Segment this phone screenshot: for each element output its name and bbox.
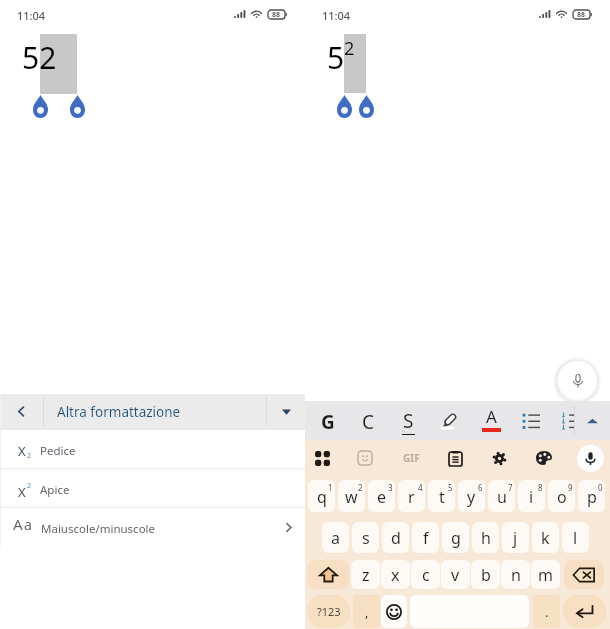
staticText: l: [573, 527, 578, 549]
button[interactable]: Back: [0, 394, 43, 429]
staticText: S: [403, 408, 414, 434]
button[interactable]: Stickers: [346, 440, 384, 476]
button[interactable]: Open submenu: [271, 508, 305, 546]
staticText: 11:04: [17, 8, 46, 23]
staticText: X: [18, 442, 26, 460]
button[interactable]: Themes: [525, 440, 563, 476]
button[interactable]: h: [472, 522, 499, 553]
staticText: 52: [22, 37, 57, 78]
staticText: k: [541, 527, 550, 549]
staticText: q: [317, 486, 327, 508]
button[interactable]: f: [412, 522, 439, 553]
staticText: ?123: [317, 604, 341, 619]
staticText: 0: [598, 482, 603, 493]
button[interactable]: 0: [578, 480, 605, 512]
staticText: 88: [577, 10, 586, 20]
button[interactable]: n: [501, 560, 530, 589]
staticText: 4: [418, 482, 423, 493]
staticText: m: [538, 564, 553, 586]
staticText: G: [321, 409, 335, 435]
button[interactable]: X: [0, 469, 305, 507]
staticText: ,: [365, 603, 369, 621]
staticText: A: [13, 514, 23, 534]
staticText: 5: [327, 37, 345, 78]
staticText: b: [481, 564, 491, 586]
button[interactable]: Back: [0, 394, 305, 429]
button[interactable]: 7: [488, 480, 515, 512]
staticText: 11:04: [322, 8, 351, 23]
button[interactable]: 3: [368, 480, 395, 512]
button[interactable]: Shift: [307, 560, 349, 589]
button[interactable]: k: [532, 522, 559, 553]
staticText: o: [557, 486, 567, 508]
button[interactable]: Backspace: [564, 560, 604, 589]
button[interactable]: Voice input: [558, 361, 597, 400]
button[interactable]: g: [442, 522, 469, 553]
button[interactable]: G: [308, 401, 348, 440]
staticText: a: [24, 515, 32, 534]
staticText: 2: [344, 36, 355, 61]
button[interactable]: l: [562, 522, 589, 553]
button[interactable]: Highlighter: [429, 401, 469, 440]
button[interactable]: Bulleted list: [512, 401, 550, 440]
button[interactable]: Numbered list: [551, 401, 585, 440]
staticText: d: [391, 527, 401, 549]
button[interactable]: 4: [398, 480, 425, 512]
button[interactable]: s: [352, 522, 379, 553]
staticText: X: [18, 483, 26, 501]
button[interactable]: C: [348, 401, 388, 440]
button[interactable]: Collapse toolbar: [575, 401, 609, 440]
staticText: Apice: [40, 482, 70, 498]
button[interactable]: Symbols: [307, 595, 350, 628]
staticText: p: [587, 486, 597, 508]
button[interactable]: d: [382, 522, 409, 553]
staticText: s: [362, 527, 370, 549]
button[interactable]: Apps: [303, 440, 341, 476]
button[interactable]: 5: [428, 480, 455, 512]
button[interactable]: b: [471, 560, 500, 589]
staticText: i: [529, 486, 534, 508]
staticText: 6: [478, 482, 483, 493]
staticText: h: [481, 527, 491, 549]
staticText: 2: [358, 482, 363, 493]
button[interactable]: GIF: [392, 440, 430, 476]
button[interactable]: 6: [458, 480, 485, 512]
staticText: a: [331, 527, 340, 549]
button[interactable]: a: [322, 522, 349, 553]
button[interactable]: A: [0, 508, 305, 546]
button[interactable]: x: [381, 560, 410, 589]
staticText: y: [467, 486, 476, 508]
button[interactable]: 9: [548, 480, 575, 512]
button[interactable]: m: [531, 560, 560, 589]
button[interactable]: X: [0, 430, 305, 468]
staticText: r: [408, 486, 415, 508]
staticText: g: [451, 527, 461, 549]
button[interactable]: ,: [353, 595, 380, 628]
button[interactable]: c: [411, 560, 440, 589]
button[interactable]: Enter: [563, 595, 606, 628]
staticText: 2: [27, 481, 32, 491]
button[interactable]: Voice typing: [577, 445, 604, 472]
staticText: x: [391, 564, 400, 586]
button[interactable]: v: [441, 560, 470, 589]
button[interactable]: Collapse menu: [267, 394, 305, 429]
staticText: 3: [388, 482, 393, 493]
button[interactable]: 2: [338, 480, 365, 512]
button[interactable]: Clipboard: [436, 440, 474, 476]
button[interactable]: j: [502, 522, 529, 553]
staticText: w: [345, 486, 358, 508]
button[interactable]: .: [533, 595, 560, 628]
button[interactable]: Emoji: [381, 595, 407, 628]
staticText: f: [423, 527, 429, 549]
staticText: A: [486, 405, 497, 428]
button[interactable]: Text colour: [471, 401, 511, 440]
button[interactable]: S: [388, 401, 428, 440]
button[interactable]: Settings: [480, 440, 518, 476]
staticText: v: [451, 564, 460, 586]
staticText: z: [362, 564, 370, 586]
staticText: 7: [508, 482, 513, 493]
button[interactable]: 8: [518, 480, 545, 512]
button[interactable]: z: [351, 560, 380, 589]
button[interactable]: 1: [308, 480, 335, 512]
